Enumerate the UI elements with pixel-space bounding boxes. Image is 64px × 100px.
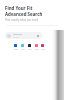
staticText: Advanced Search xyxy=(5,11,43,17)
button[interactable]: Home xyxy=(12,44,19,50)
button[interactable] xyxy=(5,32,42,39)
staticText: Find Your Fit xyxy=(5,5,33,11)
button[interactable]: Saved xyxy=(26,44,33,50)
button[interactable]: Search xyxy=(19,44,26,50)
button[interactable]: Alerts xyxy=(33,44,40,50)
staticText: Find exactly what you need xyxy=(5,18,38,22)
button[interactable]: Profile xyxy=(40,44,45,50)
